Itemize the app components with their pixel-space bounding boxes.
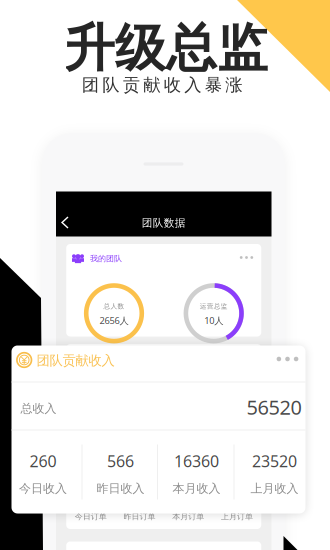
staticText: 昨日订单 [123,512,155,521]
staticText: 260 [29,450,56,472]
staticText: 总人数 [103,302,124,310]
staticText: 10人 [204,314,223,327]
staticText: 总收入 [20,401,56,416]
staticText: 本月订单 [172,512,204,521]
staticText: 2656人 [99,314,128,327]
staticText: 566 [107,450,134,472]
button[interactable]: 16360 [160,430,233,514]
staticText: 团队贡献收入 [36,352,114,369]
button[interactable]: More [271,348,303,370]
button[interactable]: More [234,247,258,267]
staticText: 昨日收入 [96,481,144,496]
staticText: 升级总监 [64,17,268,80]
staticText: 23520 [252,450,297,472]
button[interactable]: 566 [84,430,157,514]
staticText: 上月订单 [221,512,253,521]
button[interactable]: 团队数据 [56,191,271,236]
staticText: 我的团队 [90,254,122,263]
staticText: 今日订单 [75,512,107,521]
button[interactable]: 23520 [238,430,311,514]
button[interactable]: 260 [6,430,80,514]
staticText: 16360 [174,450,219,472]
staticText: 56520 [246,394,301,420]
staticText: 团队数据 [142,216,186,229]
button[interactable]: Back [56,211,78,234]
staticText: 团队贡献收入暴涨 [82,74,242,96]
staticText: 今日收入 [19,481,67,496]
staticText: 本月收入 [172,481,220,496]
staticText: 上月收入 [250,481,298,496]
staticText: 运营总监 [200,302,228,310]
